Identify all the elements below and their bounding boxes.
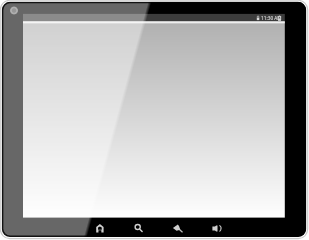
button[interactable]: Volume bbox=[207, 218, 225, 234]
staticText: 11:30 AM bbox=[261, 15, 282, 21]
button[interactable]: Home bbox=[92, 218, 110, 234]
button[interactable]: Back bbox=[169, 218, 187, 234]
button[interactable]: Search bbox=[130, 218, 148, 234]
